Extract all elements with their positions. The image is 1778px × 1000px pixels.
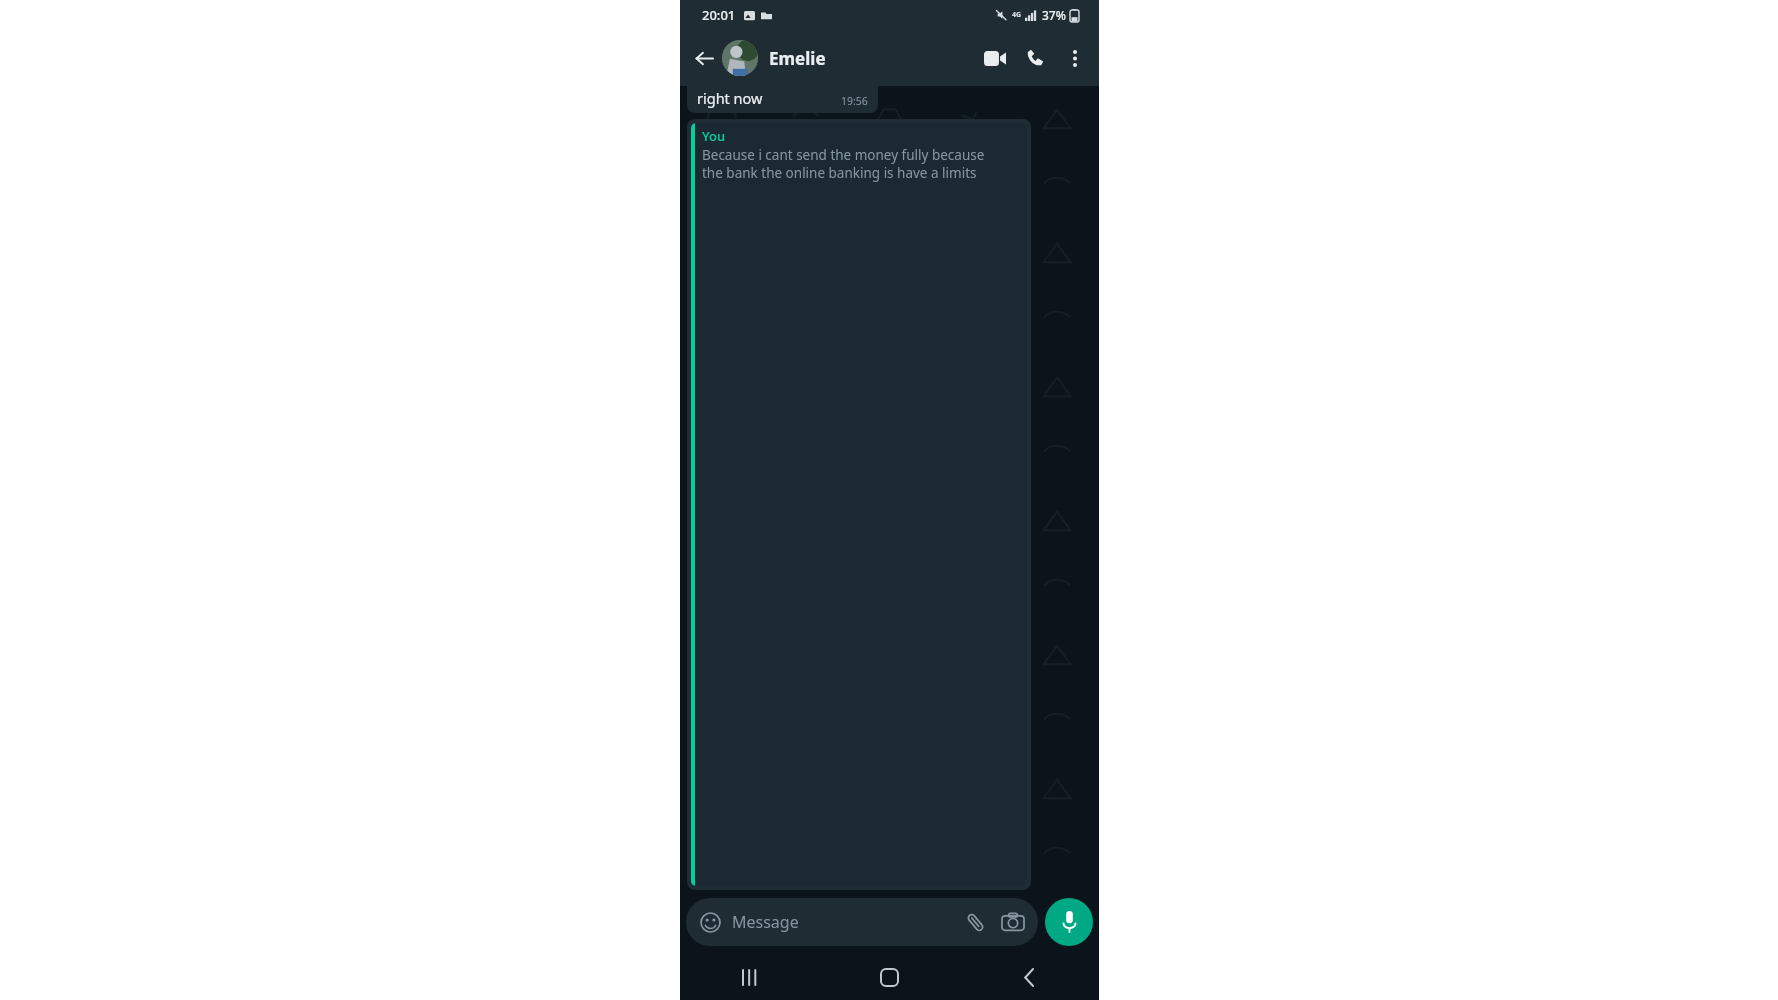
button[interactable]: You (691, 123, 1027, 886)
button[interactable]: Back (959, 954, 1099, 1000)
staticText: 20:01 (702, 6, 736, 24)
button[interactable]: More options (1055, 38, 1095, 78)
button[interactable]: Voice message (1045, 898, 1093, 946)
button[interactable]: Home (819, 954, 959, 1000)
staticText: 19:56 (841, 94, 868, 108)
button[interactable]: Attach (962, 909, 988, 935)
button[interactable]: right now (687, 86, 878, 113)
staticText: Because i cant send the money fully beca… (702, 146, 985, 182)
staticText: You (702, 127, 726, 145)
button[interactable]: Emelie (769, 47, 975, 70)
button[interactable]: Camera (1000, 909, 1026, 935)
button[interactable]: Emoji (686, 898, 1038, 946)
button[interactable]: Profile photo (722, 40, 758, 76)
button[interactable]: Emoji (698, 910, 722, 934)
staticText: right now (697, 88, 763, 108)
staticText: 4G (1012, 10, 1022, 20)
staticText: Message (732, 911, 799, 933)
button[interactable]: Recents (680, 954, 819, 1000)
staticText: Emelie (769, 47, 826, 70)
button[interactable]: Back (688, 42, 720, 74)
button[interactable]: Voice call (1015, 38, 1055, 78)
staticText: 37% (1042, 7, 1066, 23)
button[interactable]: You (687, 119, 1031, 890)
button[interactable]: Video call (975, 38, 1015, 78)
